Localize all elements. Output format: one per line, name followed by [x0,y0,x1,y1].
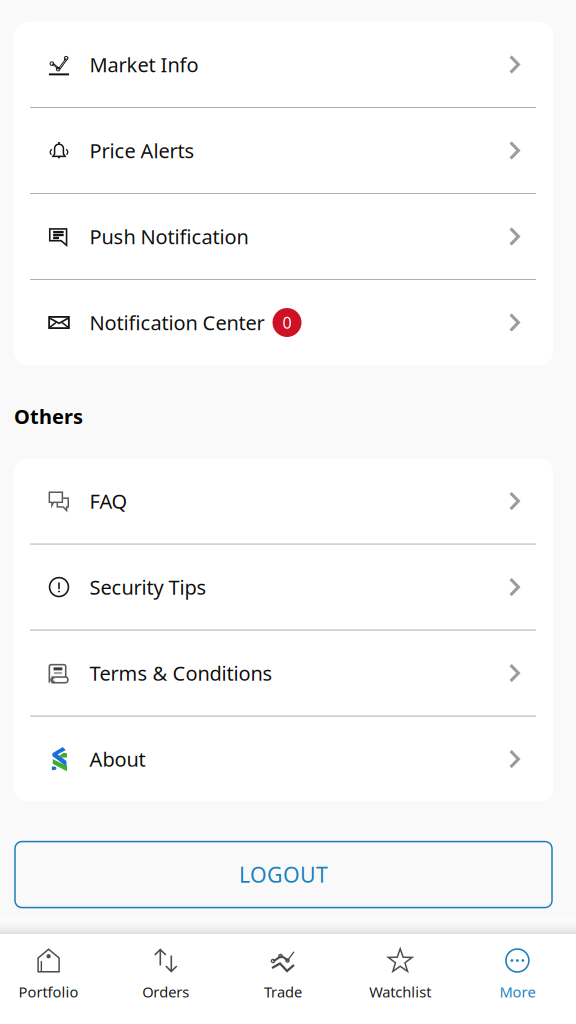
button[interactable]: Market Info [14,22,553,107]
staticText: 0 [282,312,291,333]
staticText: Market Info [89,51,198,78]
staticText: LOGOUT [239,860,328,889]
button[interactable]: Security Tips [14,545,553,630]
staticText: About [89,746,145,772]
button[interactable]: Trade [224,934,342,1024]
button[interactable]: Price Alerts [14,108,553,193]
button[interactable]: About [14,717,553,802]
button[interactable]: Portfolio [0,934,107,1024]
button[interactable]: Notification Center [14,280,553,365]
staticText: Notification Center [89,309,264,336]
staticText: Others [14,403,83,430]
button[interactable]: Watchlist [342,934,459,1024]
button[interactable]: Terms & Conditions [14,631,553,716]
staticText: FAQ [89,488,127,514]
staticText: Terms & Conditions [89,660,272,686]
staticText: Trade [264,982,302,1001]
button[interactable]: Push Notification [14,194,553,279]
button[interactable]: More [459,934,576,1024]
staticText: Watchlist [369,982,431,1001]
button[interactable]: Orders [107,934,224,1024]
staticText: Push Notification [89,223,248,250]
button[interactable]: FAQ [14,459,553,544]
staticText: Orders [142,982,189,1001]
staticText: Security Tips [89,574,206,600]
staticText: More [499,982,535,1001]
button[interactable]: LOGOUT [15,842,552,908]
staticText: Portfolio [19,982,79,1001]
staticText: Price Alerts [89,137,194,164]
